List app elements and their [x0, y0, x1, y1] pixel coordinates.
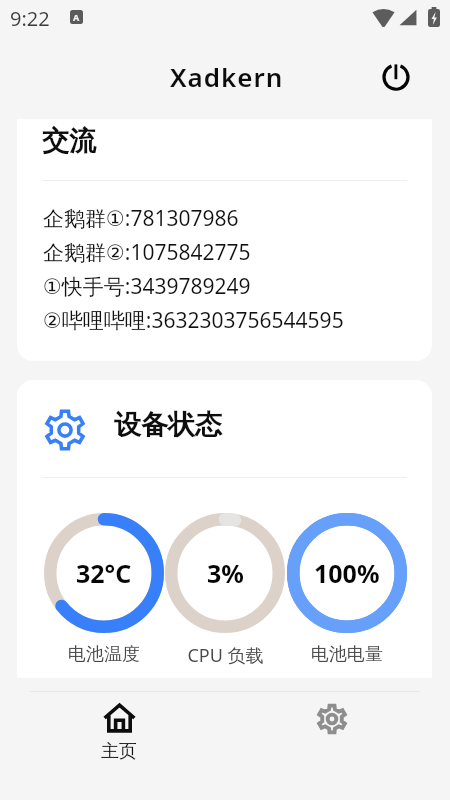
- staticText: 3%: [207, 556, 244, 590]
- staticText: 32°C: [76, 556, 132, 590]
- staticText: ①快手号:3439789249: [43, 272, 251, 301]
- button[interactable]: 交流: [17, 119, 432, 361]
- button[interactable]: Settings: [225, 691, 438, 800]
- staticText: ②哔哩哔哩:3632303756544595: [43, 306, 344, 335]
- button[interactable]: 主页: [12, 691, 225, 800]
- staticText: 9:22: [10, 5, 50, 32]
- staticText: 交流: [42, 124, 96, 158]
- staticText: 设备状态: [114, 408, 222, 442]
- staticText: 企鹅群②:1075842775: [43, 238, 251, 267]
- staticText: Xadkern: [170, 59, 284, 94]
- button[interactable]: Power: [374, 55, 418, 99]
- staticText: CPU 负载: [187, 643, 264, 668]
- staticText: 企鹅群①:781307986: [43, 204, 239, 233]
- staticText: 电池温度: [68, 643, 140, 666]
- staticText: 100%: [314, 556, 380, 590]
- staticText: 主页: [101, 740, 137, 763]
- staticText: A: [73, 11, 80, 23]
- staticText: 电池电量: [311, 643, 383, 666]
